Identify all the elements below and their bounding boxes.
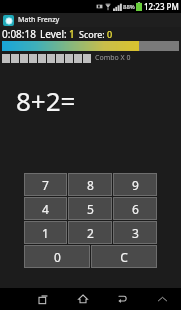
staticText: 0 xyxy=(54,249,61,265)
staticText: 8 xyxy=(87,177,94,193)
button[interactable]: C xyxy=(92,246,156,267)
button[interactable]: 0 xyxy=(25,246,89,267)
staticText: Level: xyxy=(40,27,67,40)
button[interactable]: 2 xyxy=(69,222,111,243)
staticText: C xyxy=(120,249,128,265)
staticText: Math Frenzy xyxy=(18,15,60,25)
staticText: 7 xyxy=(42,177,49,193)
button[interactable]: 6 xyxy=(114,198,156,219)
staticText: 1 xyxy=(42,225,49,241)
button[interactable]: 9 xyxy=(114,174,156,195)
staticText: 6 xyxy=(132,201,139,217)
button[interactable]: 1 xyxy=(25,222,66,243)
staticText: Score: xyxy=(79,28,105,40)
button[interactable]: 5 xyxy=(69,198,111,219)
button[interactable]: 4 xyxy=(25,198,66,219)
button[interactable]: Home xyxy=(72,288,94,310)
staticText: 1 xyxy=(69,27,75,40)
staticText: 88% xyxy=(123,3,135,11)
button[interactable]: Recent apps xyxy=(32,288,54,310)
staticText: 0:08:18 xyxy=(2,27,36,40)
button[interactable]: Expand xyxy=(151,288,173,310)
staticText: 8+2= xyxy=(16,83,76,118)
staticText: 5 xyxy=(87,201,94,217)
staticText: Combo X 0 xyxy=(95,53,131,63)
button[interactable]: 8 xyxy=(69,174,111,195)
staticText: 12:23 PM xyxy=(144,1,179,12)
staticText: 4 xyxy=(42,201,49,217)
staticText: 2 xyxy=(87,225,94,241)
button[interactable]: 7 xyxy=(25,174,66,195)
staticText: 9 xyxy=(132,177,139,193)
staticText: 3 xyxy=(132,225,139,241)
button[interactable]: 3 xyxy=(114,222,156,243)
staticText: 0 xyxy=(107,28,113,40)
button[interactable]: Back xyxy=(111,288,133,310)
